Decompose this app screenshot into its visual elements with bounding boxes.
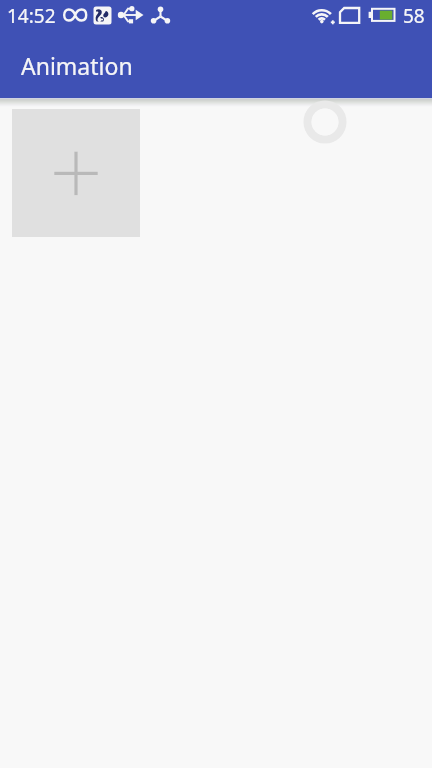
other: Loading (303, 100, 347, 144)
staticText: 14:52 (7, 3, 56, 29)
staticText: Animation (21, 50, 133, 81)
staticText: 58 (403, 3, 425, 29)
button[interactable]: Add animation (12, 109, 140, 237)
